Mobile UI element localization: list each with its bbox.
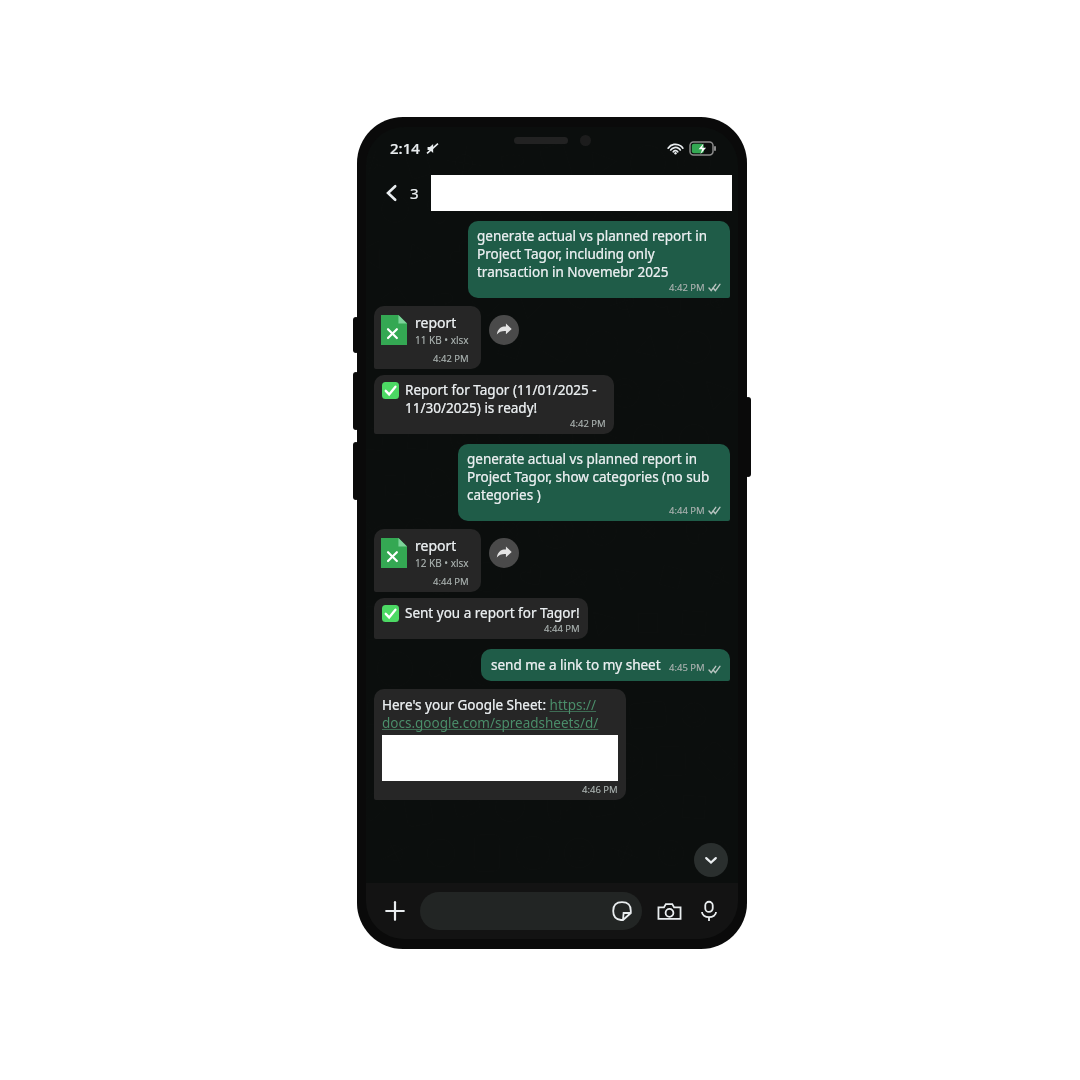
staticText: 4:42 PM [433, 352, 469, 365]
staticText: 4:45 PM [669, 661, 705, 674]
staticText: report [415, 313, 457, 332]
staticText: 2:14 [390, 138, 420, 158]
staticText: 4:44 PM [669, 504, 705, 517]
other: Stickers [612, 901, 632, 921]
staticText: 11 KB • xlsx [415, 333, 469, 347]
button[interactable]: Here's your Google Sheet: https://docs.g… [374, 689, 626, 800]
button[interactable]: report [374, 529, 481, 592]
button[interactable]: Sent you a report for Tagor! [374, 598, 588, 639]
staticText: 4:44 PM [433, 575, 469, 588]
staticText: send me a link to my sheet [491, 656, 661, 674]
staticText: report [415, 536, 457, 555]
button[interactable]: report [374, 306, 481, 369]
button[interactable]: Camera [654, 896, 684, 926]
button[interactable]: Scroll to bottom [694, 843, 728, 877]
staticText: 12 KB • xlsx [415, 556, 469, 570]
staticText: 4:42 PM [570, 417, 606, 430]
button[interactable]: generate actual vs planned report in Pro… [468, 221, 730, 298]
staticText: 4:44 PM [544, 622, 580, 635]
staticText: 4:46 PM [582, 783, 618, 796]
staticText: 4:42 PM [669, 281, 705, 294]
button[interactable]: Back [378, 179, 423, 207]
staticText: generate actual vs planned report in Pro… [467, 450, 722, 504]
button[interactable]: Stickers [420, 892, 642, 930]
button[interactable]: Forward [489, 315, 519, 345]
button[interactable]: Report for Tagor (11/01/2025 - 11/30/202… [374, 375, 614, 434]
staticText: Sent you a report for Tagor! [405, 604, 580, 622]
button[interactable]: Voice message [694, 896, 724, 926]
staticText: 3 [410, 183, 419, 203]
staticText: Report for Tagor (11/01/2025 - 11/30/202… [405, 381, 606, 417]
button[interactable]: send me a link to my sheet [481, 649, 730, 681]
button[interactable]: generate actual vs planned report in Pro… [458, 444, 730, 521]
button[interactable]: Attach [380, 896, 410, 926]
button[interactable]: Forward [489, 538, 519, 568]
staticText: generate actual vs planned report in Pro… [477, 227, 722, 281]
staticText: Here's your Google Sheet: https://docs.g… [382, 696, 618, 732]
